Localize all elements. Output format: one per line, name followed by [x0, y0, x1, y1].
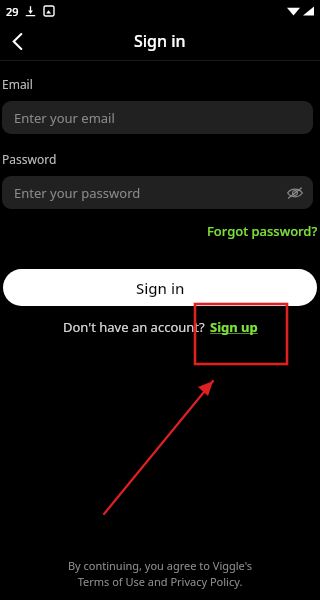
- button[interactable]: Forgot password?: [205, 220, 320, 242]
- staticText: By continuing, you agree to Viggle's Ter…: [20, 558, 300, 590]
- staticText: Sign in: [134, 30, 186, 52]
- button[interactable]: Enter your email: [2, 101, 313, 134]
- button[interactable]: Sign in: [3, 269, 317, 306]
- staticText: Forgot password?: [207, 222, 318, 240]
- button[interactable]: Show password: [282, 180, 308, 206]
- staticText: Password: [2, 151, 57, 167]
- staticText: Enter your password: [14, 184, 141, 202]
- staticText: Email: [2, 76, 33, 92]
- button[interactable]: Sign up: [210, 318, 258, 336]
- staticText: Don't have an account?: [63, 318, 205, 336]
- button[interactable]: Enter your password: [2, 176, 313, 209]
- staticText: Enter your email: [14, 109, 115, 127]
- staticText: Sign up: [210, 318, 258, 336]
- button[interactable]: Back: [0, 24, 34, 58]
- staticText: 29: [6, 4, 19, 19]
- staticText: Sign in: [136, 278, 185, 298]
